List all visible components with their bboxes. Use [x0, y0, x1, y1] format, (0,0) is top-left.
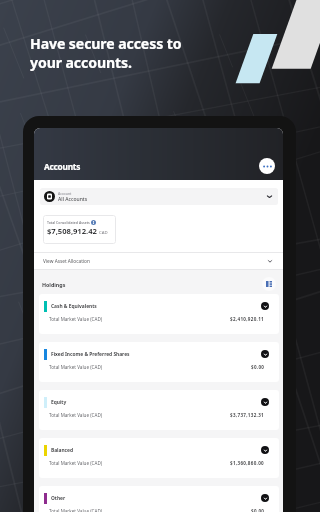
staticText: Total Market Value (CAD) [49, 460, 103, 466]
staticText: Total Market Value (CAD) [49, 412, 103, 418]
button[interactable]: Expand [261, 398, 269, 406]
button[interactable]: Fixed Income & Preferred Shares [39, 342, 279, 382]
staticText: CAD [99, 229, 108, 235]
staticText: All Accounts [58, 196, 88, 203]
staticText: $0.00 [251, 508, 265, 512]
button[interactable]: More options [259, 158, 275, 174]
staticText: Have secure access to your accounts. [30, 34, 182, 72]
staticText: $7,508,912.42 [47, 226, 97, 236]
button[interactable]: Expand [261, 494, 269, 502]
staticText: Other [51, 495, 66, 502]
staticText: Total Market Value (CAD) [49, 316, 103, 322]
staticText: $1,360,860.00 [230, 460, 265, 466]
button[interactable]: Expand [261, 350, 269, 358]
button[interactable]: View Asset Allocation [34, 252, 283, 269]
button[interactable]: Accounts [44, 161, 81, 172]
button[interactable]: Account [40, 188, 278, 205]
staticText: Total Market Value (CAD) [49, 364, 103, 370]
staticText: Equity [51, 399, 67, 406]
staticText: Fixed Income & Preferred Shares [51, 351, 130, 358]
staticText: Balanced [51, 447, 74, 454]
staticText: $0.00 [251, 364, 265, 370]
button[interactable]: Expand [261, 302, 269, 310]
staticText: Account [58, 191, 72, 196]
staticText: View Asset Allocation [43, 258, 90, 264]
button[interactable]: Balanced [39, 438, 279, 478]
staticText: Total Consolidated Assets [47, 220, 90, 225]
staticText: Holdings [42, 281, 66, 288]
button[interactable]: Holdings [42, 281, 66, 288]
button[interactable]: Change view [262, 277, 276, 291]
button[interactable]: Other [39, 486, 279, 512]
button[interactable]: Cash & Equivalents [39, 294, 279, 334]
button[interactable]: Equity [39, 390, 279, 430]
staticText: $3,737,132.31 [230, 412, 265, 418]
staticText: Total Market Value (CAD) [49, 508, 103, 512]
staticText: Cash & Equivalents [51, 303, 97, 310]
staticText: $2,410,920.11 [230, 316, 265, 322]
staticText: Accounts [44, 161, 81, 172]
button[interactable]: Expand [261, 446, 269, 454]
